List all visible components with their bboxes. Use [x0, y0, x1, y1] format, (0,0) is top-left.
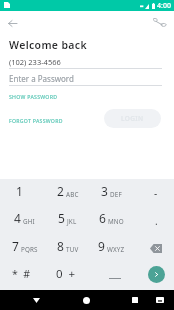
button[interactable]: -	[130, 179, 174, 206]
button[interactable]: .	[130, 206, 174, 234]
staticText: PQRS	[21, 245, 38, 254]
staticText: 4	[14, 210, 21, 226]
button[interactable]: 4	[0, 206, 43, 234]
button[interactable]: 6	[86, 206, 130, 234]
button[interactable]: 5	[43, 206, 86, 234]
button[interactable]: Switch keyboard	[150, 292, 170, 308]
staticText: 7	[12, 238, 19, 254]
staticText: 5	[58, 210, 65, 226]
staticText: 3	[101, 183, 108, 199]
button[interactable]: Backspace	[150, 244, 162, 253]
staticText: 2	[57, 183, 64, 199]
button[interactable]: Next	[148, 266, 165, 283]
staticText: -	[154, 186, 158, 200]
staticText: 1	[16, 183, 23, 199]
staticText: Enter a Password	[9, 73, 74, 84]
staticText: SHOW PASSWORD	[9, 93, 58, 100]
staticText: ABC	[66, 190, 79, 199]
staticText: .	[155, 214, 158, 228]
button[interactable]: 2	[43, 179, 86, 206]
staticText: WXYZ	[107, 245, 125, 254]
staticText: 8	[57, 238, 64, 254]
staticText: LOGIN	[121, 114, 144, 123]
staticText: 9	[98, 238, 105, 254]
staticText: (102) 233-4566	[9, 57, 61, 67]
button[interactable]: 9	[86, 234, 130, 262]
staticText: DEF	[110, 190, 122, 199]
staticText: 0 +	[56, 266, 76, 282]
button[interactable]: Recents	[124, 292, 145, 308]
button[interactable]: LOGIN	[104, 109, 161, 128]
button[interactable]: Home	[76, 292, 97, 308]
staticText: TUV	[66, 245, 79, 254]
button[interactable]: Call	[150, 14, 170, 30]
staticText: Welcome back	[9, 38, 87, 52]
button[interactable]: SHOW PASSWORD	[9, 91, 58, 102]
button[interactable]: 7	[0, 234, 43, 262]
staticText: 6	[99, 210, 106, 226]
staticText: 4:00	[157, 1, 171, 11]
button[interactable]: 0 +	[43, 262, 86, 290]
staticText: * #	[12, 267, 31, 281]
button[interactable]: FORGOT PASSWORD	[9, 115, 63, 126]
button[interactable]: Space	[86, 262, 130, 290]
button[interactable]: 8	[43, 234, 86, 262]
staticText: MNO	[108, 217, 124, 226]
button[interactable]: 1	[0, 179, 43, 206]
button[interactable]: Back	[4, 15, 20, 31]
staticText: JKL	[67, 217, 77, 226]
button[interactable]: Hide keyboard	[26, 292, 47, 308]
staticText: GHI	[23, 217, 35, 226]
button[interactable]: 3	[86, 179, 130, 206]
staticText: FORGOT PASSWORD	[9, 117, 63, 124]
button[interactable]: * #	[0, 262, 43, 290]
